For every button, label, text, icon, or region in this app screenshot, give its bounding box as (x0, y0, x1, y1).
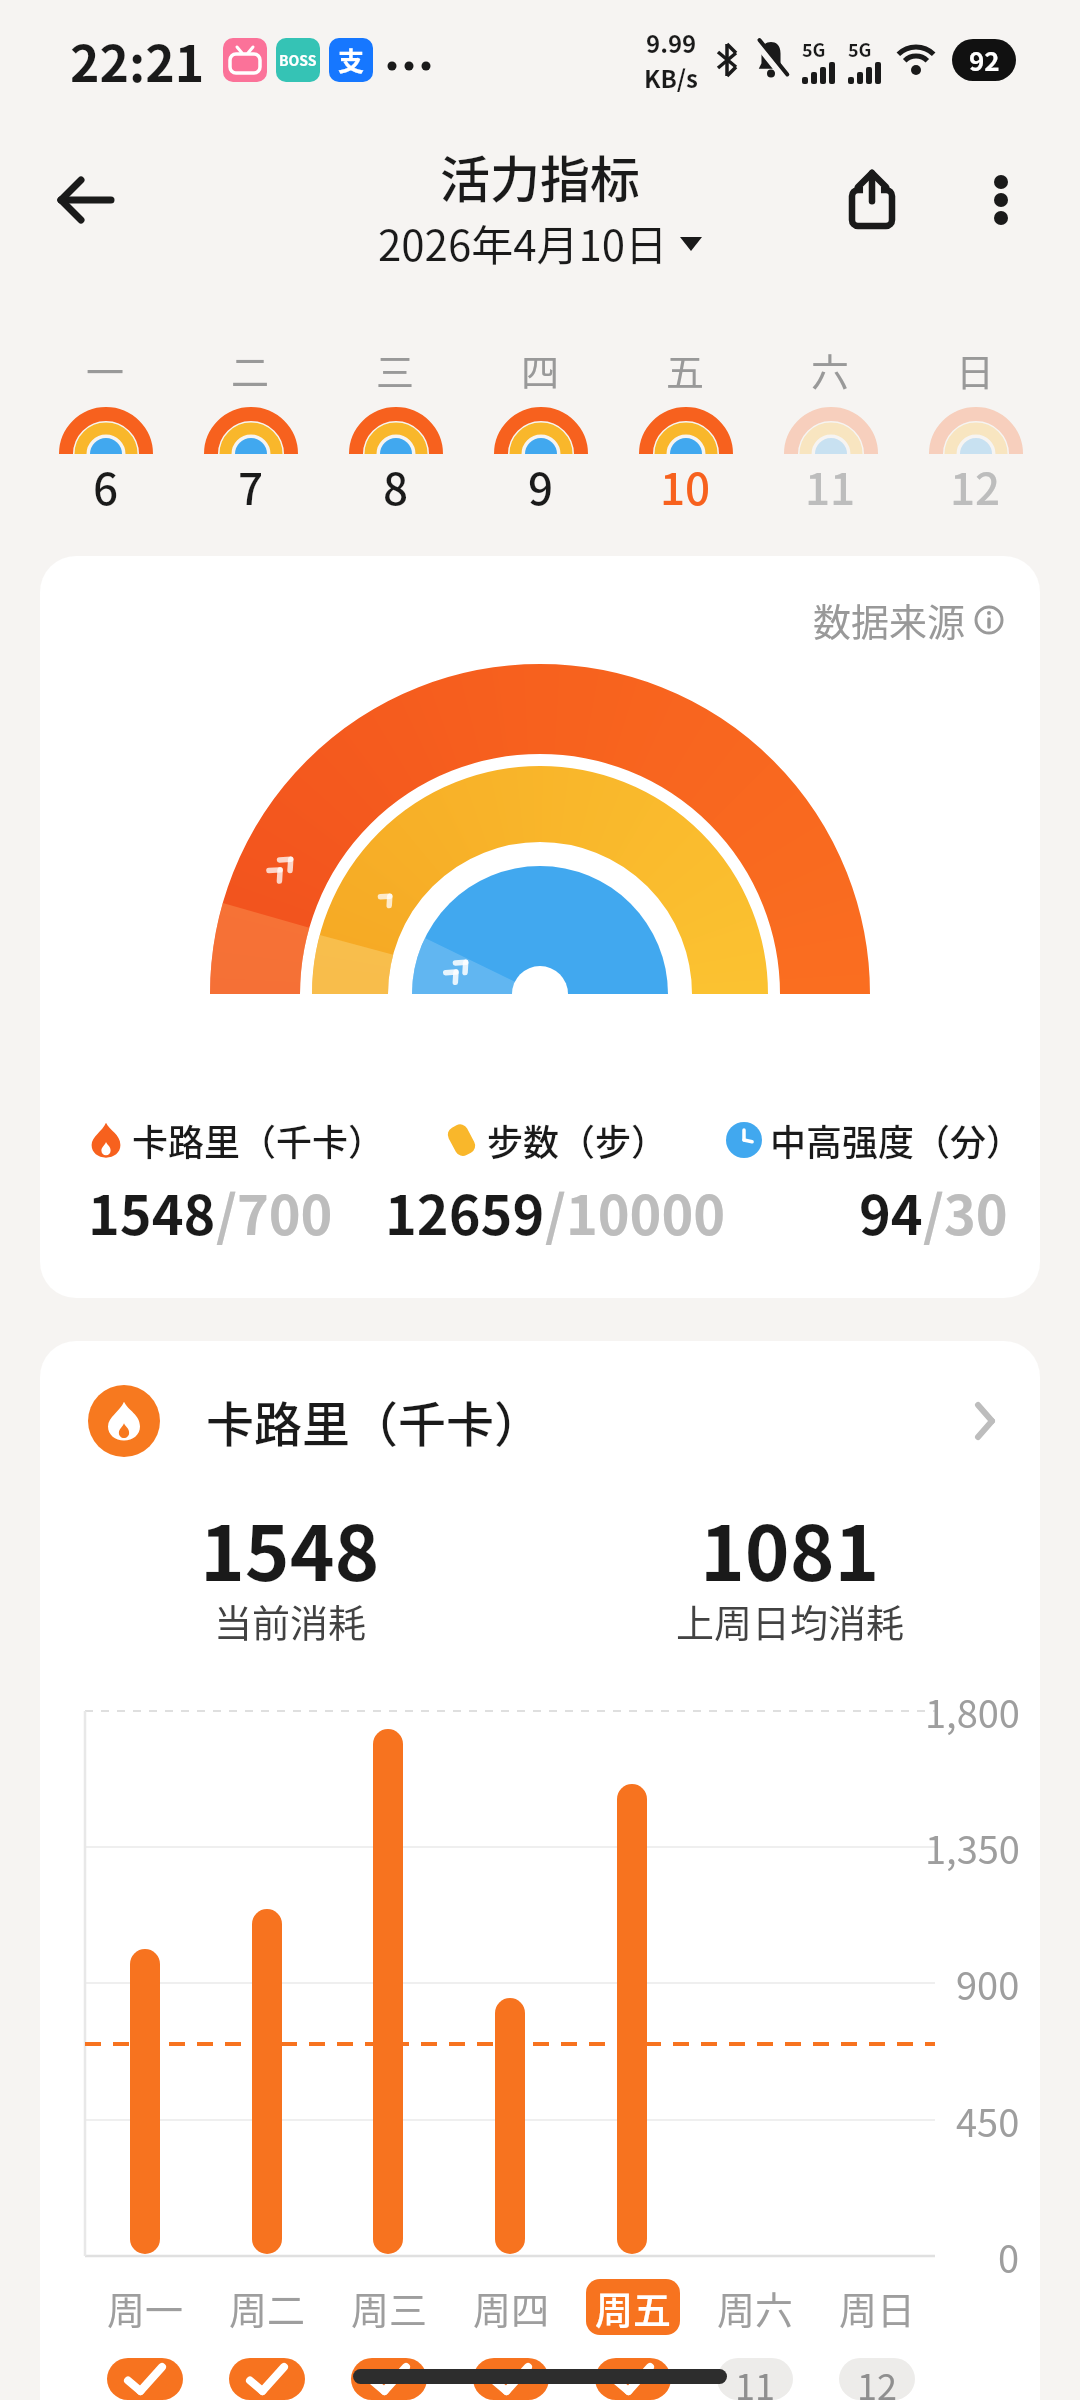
button[interactable] (840, 168, 904, 232)
staticText: 周日 (839, 2280, 916, 2335)
button[interactable]: 数据来源 (813, 592, 1004, 647)
staticText: 周五 (595, 2280, 672, 2335)
staticText: 1548 (88, 1172, 216, 1250)
button[interactable]: 日 (903, 342, 1048, 518)
button[interactable]: 卡路里（千卡） (88, 1385, 996, 1457)
button[interactable]: 周日 (816, 2276, 938, 2338)
staticText: 12 (950, 454, 1001, 518)
button[interactable]: 周一 (84, 2276, 206, 2338)
staticText: 1548 (200, 1493, 380, 1603)
button[interactable] (473, 2358, 549, 2400)
button[interactable]: 周四 (450, 2276, 572, 2338)
staticText: 9 (528, 454, 554, 518)
staticText: 92 (969, 41, 1000, 79)
button[interactable] (229, 2358, 305, 2400)
button[interactable]: 周六 (694, 2276, 816, 2338)
staticText: 2026年4月10日 (378, 212, 668, 273)
staticText: 22:21 (70, 24, 205, 96)
staticText: 10 (660, 454, 711, 518)
staticText: 12 (857, 2358, 897, 2400)
staticText: 卡路里（千卡） (132, 1114, 385, 1166)
staticText: 5G (802, 36, 826, 62)
staticText: 中高强度（分） (770, 1114, 1008, 1166)
staticText: 7 (238, 454, 264, 518)
staticText: 三 (376, 342, 415, 397)
staticText: 1081 (700, 1493, 880, 1603)
staticText: 11 (735, 2358, 775, 2400)
staticText: 六 (811, 342, 850, 397)
staticText: 5G (848, 36, 872, 62)
staticText: 五 (666, 342, 705, 397)
staticText: 周四 (473, 2280, 550, 2335)
staticText: 数据来源 (813, 592, 966, 647)
button[interactable] (974, 173, 1028, 227)
staticText: 卡路里（千卡） (206, 1386, 543, 1456)
button[interactable]: 五 (613, 342, 758, 518)
staticText: 8 (383, 454, 409, 518)
button[interactable]: 周二 (206, 2276, 328, 2338)
staticText: 900 (956, 1956, 1020, 2011)
button[interactable] (48, 162, 124, 238)
staticText: 步数（步） (487, 1114, 668, 1166)
staticText: /30 (923, 1172, 1008, 1250)
staticText: KB/s (644, 60, 698, 95)
button[interactable]: 周五 (572, 2276, 694, 2338)
staticText: 四 (521, 342, 560, 397)
staticText: 1,800 (925, 1684, 1020, 1739)
button[interactable]: 11 (717, 2358, 793, 2400)
staticText: 支 (338, 41, 365, 79)
button[interactable]: 四 (468, 342, 613, 518)
staticText: 周二 (229, 2280, 306, 2335)
staticText: 周六 (717, 2280, 794, 2335)
button[interactable]: 六 (758, 342, 903, 518)
staticText: 94 (859, 1172, 923, 1250)
staticText: 9.99 (646, 25, 697, 60)
staticText: 上周日均消耗 (676, 1593, 905, 1648)
button[interactable]: 周三 (328, 2276, 450, 2338)
staticText: 0 (998, 2229, 1020, 2284)
button[interactable] (351, 2358, 427, 2400)
staticText: 二 (231, 342, 270, 397)
button[interactable]: 二 (178, 342, 323, 518)
staticText: 周三 (351, 2280, 428, 2335)
staticText: 活力指标 (440, 140, 640, 212)
button[interactable]: 2026年4月10日 (378, 212, 702, 273)
staticText: 11 (805, 454, 856, 518)
staticText: 6 (93, 454, 119, 518)
staticText: 周一 (107, 2280, 184, 2335)
staticText: /10000 (545, 1172, 726, 1250)
button[interactable] (595, 2358, 671, 2400)
button[interactable]: 12 (839, 2358, 915, 2400)
staticText: 当前消耗 (214, 1593, 367, 1648)
staticText: 450 (956, 2093, 1020, 2148)
button[interactable]: 一 (33, 342, 178, 518)
staticText: BOSS (279, 50, 317, 70)
staticText: 一 (86, 342, 125, 397)
button[interactable]: 三 (323, 342, 468, 518)
button[interactable] (107, 2358, 183, 2400)
staticText: 日 (956, 342, 995, 397)
staticText: 12659 (385, 1172, 545, 1250)
staticText: /700 (216, 1172, 333, 1250)
staticText: 1,350 (925, 1820, 1020, 1875)
